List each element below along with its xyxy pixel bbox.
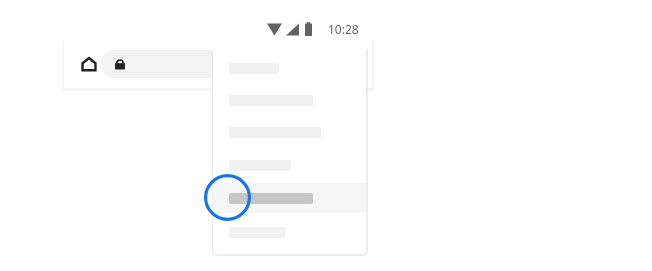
button[interactable]: Home (77, 52, 101, 76)
button[interactable] (101, 50, 333, 78)
button[interactable]: Home (64, 40, 372, 88)
button[interactable] (229, 193, 313, 204)
button[interactable] (213, 183, 366, 213)
staticText: 10:28 (328, 21, 359, 37)
